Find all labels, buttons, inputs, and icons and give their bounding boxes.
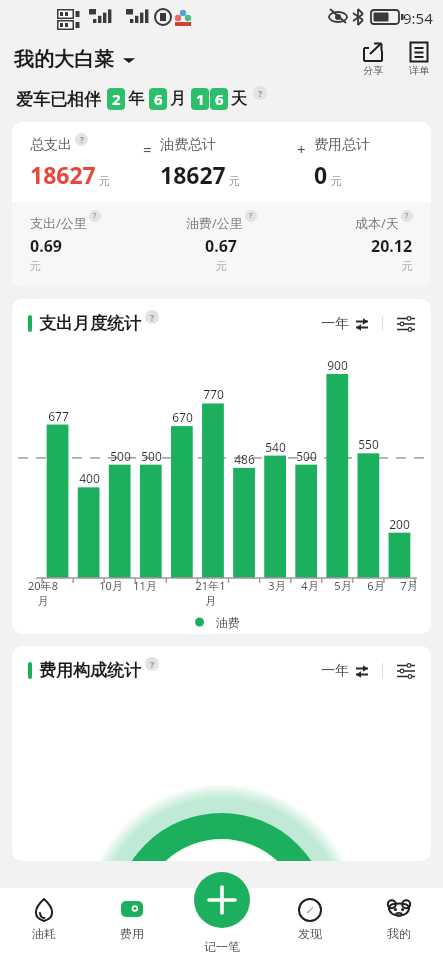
staticText: 元 [216,259,227,273]
staticText: 20.12 [371,235,413,257]
staticText: 486 [234,451,255,467]
staticText: 油费 [216,615,240,630]
staticText: 5月 [334,578,352,593]
other: 切换 [354,663,370,679]
staticText: 油费总计 [160,136,216,154]
staticText: 年 [128,89,144,109]
staticText: 分享 [363,64,383,77]
button[interactable]: 一年 [321,315,370,333]
staticText: 6 [154,89,163,109]
staticText: ? [405,211,409,221]
staticText: + [297,139,306,159]
staticText: 费用 [120,926,144,941]
staticText: 我的大白菜 [14,47,114,72]
staticText: 记一笔 [204,939,240,954]
staticText: 油费/公里 [186,214,243,232]
button[interactable]: 筛选 [397,662,415,680]
staticText: 0.67 [205,235,237,257]
staticText: 6月 [367,578,385,593]
staticText: 元 [229,174,240,188]
staticText: = [143,139,152,159]
other: 发现 [298,898,322,922]
staticText: 10月 [99,578,123,593]
staticText: 7月 [400,578,418,593]
staticText: 6 [215,89,224,109]
staticText: 4月 [301,578,319,593]
staticText: 2 [112,89,121,109]
staticText: 详单 [409,64,429,77]
staticText: 0 [314,159,328,190]
staticText: ? [80,134,84,145]
button[interactable]: 油费/公里 [157,214,285,273]
staticText: 200 [389,516,410,532]
staticText: 11月 [133,578,157,593]
staticText: 元 [30,259,41,273]
staticText: 500 [141,448,162,464]
staticText: 月 [170,89,186,109]
staticText: 21年1月 [194,578,227,608]
staticText: 费用总计 [314,136,370,154]
staticText: 400 [79,470,100,486]
button[interactable]: 支出/公里 [30,214,157,273]
staticText: ? [258,87,263,99]
button[interactable]: 一年 [321,662,370,680]
staticText: ? [249,211,253,221]
staticText: 我的 [387,926,411,941]
staticText: 550 [358,436,379,452]
button[interactable]: 发现 [265,896,354,941]
staticText: 油耗 [32,926,56,941]
button[interactable]: 油耗 [0,896,88,941]
staticText: 18627 [30,159,96,190]
staticText: 元 [331,174,342,188]
staticText: 540 [265,439,286,455]
button[interactable]: 我的 [354,896,443,941]
other: 油耗 [32,898,56,922]
button[interactable]: 记一笔 [194,872,250,928]
staticText: 元 [99,174,110,188]
other: 分享 [363,42,383,62]
staticText: 18627 [160,159,226,190]
staticText: 发现 [298,926,322,941]
other: 切换 [354,316,370,332]
staticText: 成本/天 [355,214,399,232]
button[interactable]: 费用 [88,896,176,941]
staticText: 9:54 [403,8,433,28]
button[interactable]: 详单 [407,42,431,77]
staticText: 1 [196,89,205,109]
staticText: ? [150,311,155,323]
staticText: 天 [231,89,247,109]
staticText: 500 [110,448,131,464]
staticText: 670 [172,409,193,425]
staticText: ? [93,211,97,221]
staticText: 费用构成统计 [39,660,141,681]
staticText: 支出/公里 [30,214,87,232]
other: 我的 [387,898,411,922]
button[interactable]: 成本/天 [285,214,413,273]
staticText: 770 [203,386,224,402]
button[interactable]: 我的大白菜 [14,47,136,72]
staticText: 爱车已相伴 [16,89,101,110]
staticText: 支出月度统计 [39,313,141,334]
staticText: 0.69 [30,235,62,257]
other: 详单 [409,42,429,62]
staticText: 3月 [268,578,286,593]
staticText: ? [150,658,155,670]
staticText: 一年 [321,662,349,680]
staticText: 20年8月 [26,578,60,608]
button[interactable]: 分享 [361,42,385,77]
button[interactable]: 总支出 [12,122,431,287]
staticText: 677 [48,408,69,424]
staticText: 元 [402,259,413,273]
staticText: 总支出 [30,136,72,154]
other: 费用 [120,898,144,922]
staticText: 一年 [321,315,349,333]
button[interactable]: 筛选 [397,315,415,333]
staticText: 900 [327,357,348,373]
staticText: 500 [296,448,317,464]
